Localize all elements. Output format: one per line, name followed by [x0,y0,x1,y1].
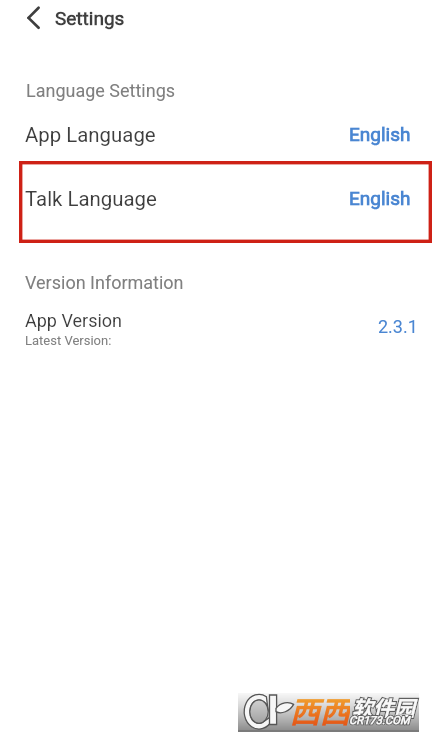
staticText: 西西 [290,688,350,727]
staticText: Settings [55,7,125,29]
staticText: CR173.COM [349,714,410,727]
staticText: Latest Version: [25,333,112,348]
staticText: 软件园 [352,692,415,722]
staticText: Version Information [25,272,184,293]
staticText: App Version [25,310,123,331]
staticText: 软件园 [352,692,415,722]
staticText: Language Settings [26,80,176,101]
staticText: Talk Language [25,187,157,211]
staticText: CR173.COM [349,714,410,727]
button[interactable]: Back [20,4,48,32]
staticText: English [349,187,411,209]
staticText: 2.3.1 [378,316,418,337]
button[interactable]: App Version [0,306,439,350]
staticText: English [349,123,411,145]
staticText: App Language [25,123,156,147]
button[interactable]: Talk Language [21,163,430,241]
button[interactable]: App Language [0,119,439,159]
